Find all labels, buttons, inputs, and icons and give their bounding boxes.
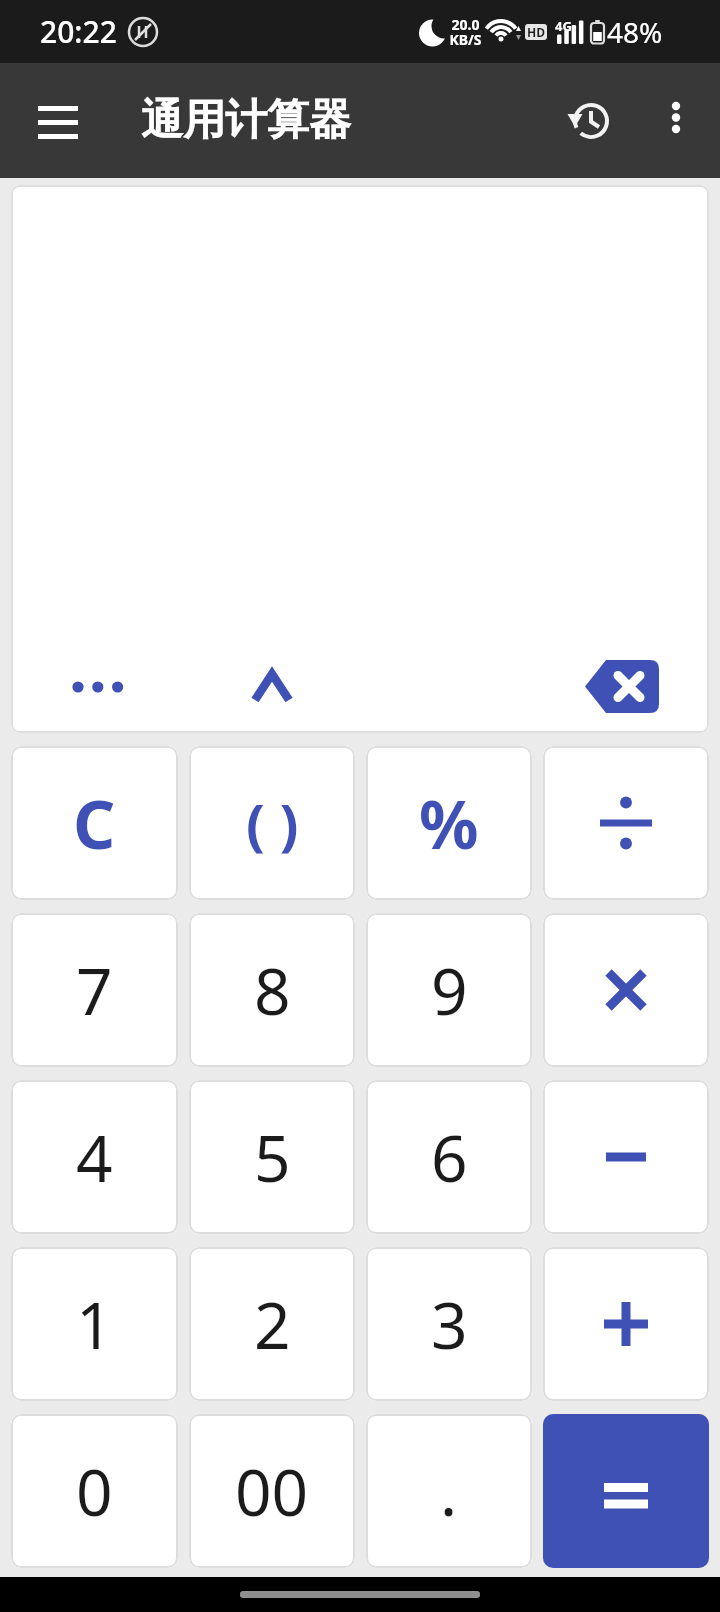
button[interactable] xyxy=(585,660,659,713)
button[interactable]: C xyxy=(11,746,178,900)
button[interactable] xyxy=(22,85,94,157)
button[interactable] xyxy=(543,1247,709,1401)
button[interactable] xyxy=(557,89,621,153)
button[interactable]: 1 xyxy=(11,1247,178,1401)
button[interactable] xyxy=(543,913,709,1067)
staticText: % xyxy=(419,778,479,868)
staticText: 1 xyxy=(76,1281,113,1368)
staticText: 4 xyxy=(76,1114,113,1201)
button[interactable] xyxy=(543,746,709,900)
button[interactable] xyxy=(543,1080,709,1234)
button[interactable] xyxy=(652,97,700,145)
staticText: 8 xyxy=(254,947,291,1034)
button[interactable]: 4 xyxy=(11,1080,178,1234)
button[interactable]: 2 xyxy=(189,1247,355,1401)
staticText: 20:22 xyxy=(40,11,117,52)
staticText: HD xyxy=(527,24,545,40)
staticText: 48% xyxy=(607,13,663,51)
staticText: 通用计算器 xyxy=(141,94,351,147)
button[interactable]: 7 xyxy=(11,913,178,1067)
staticText: 2 xyxy=(254,1281,291,1368)
button[interactable]: ( ) xyxy=(189,746,355,900)
button[interactable]: 6 xyxy=(366,1080,532,1234)
staticText: 00 xyxy=(235,1448,309,1535)
staticText: 20.0 KB/S xyxy=(449,15,482,49)
staticText: 7 xyxy=(76,947,113,1034)
button[interactable]: 3 xyxy=(366,1247,532,1401)
button[interactable] xyxy=(543,1414,709,1568)
button[interactable] xyxy=(68,667,128,707)
staticText: 6 xyxy=(431,1114,468,1201)
staticText: 3 xyxy=(431,1281,468,1368)
button[interactable]: % xyxy=(366,746,532,900)
button[interactable]: 5 xyxy=(189,1080,355,1234)
staticText: 0 xyxy=(76,1448,113,1535)
button[interactable]: 0 xyxy=(11,1414,178,1568)
button[interactable]: 9 xyxy=(366,913,532,1067)
button[interactable] xyxy=(241,663,303,711)
button[interactable]: 8 xyxy=(189,913,355,1067)
staticText: 9 xyxy=(431,947,468,1034)
staticText: 5 xyxy=(254,1114,291,1201)
staticText: . xyxy=(440,1448,458,1535)
staticText: C xyxy=(73,778,116,868)
button[interactable]: 00 xyxy=(189,1414,355,1568)
staticText: ( ) xyxy=(246,785,299,861)
staticText: 4G xyxy=(555,17,572,35)
button[interactable]: . xyxy=(366,1414,532,1568)
